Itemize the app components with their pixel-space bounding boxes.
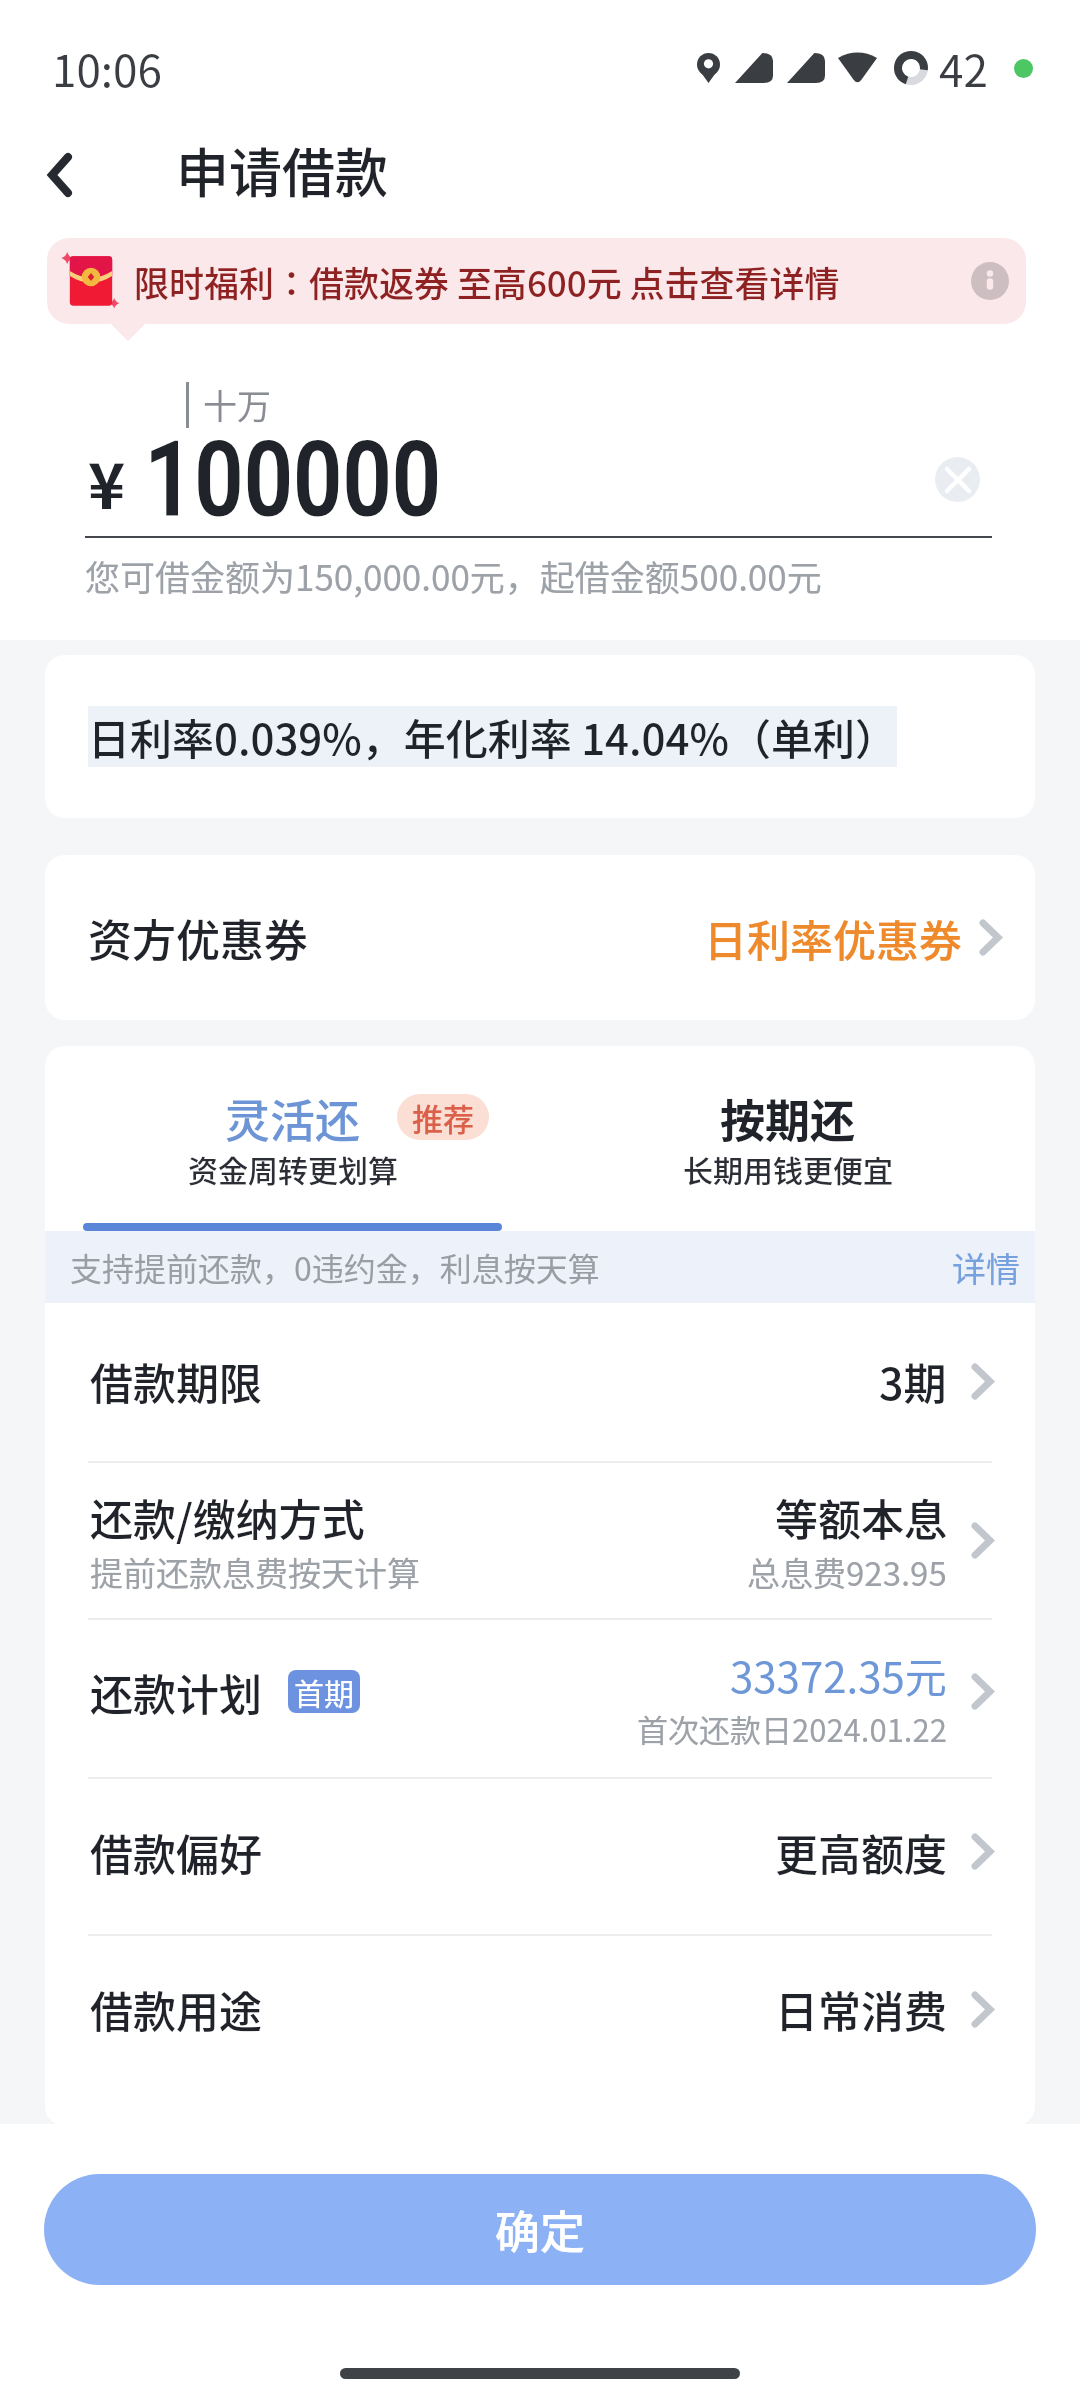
staticText: 33372.35元 xyxy=(730,1644,947,1705)
staticText: 日利率0.039%，年化利率 14.04%（单利） xyxy=(88,706,897,767)
button[interactable]: 资方优惠券 xyxy=(45,855,1035,1020)
staticText: 总息费923.95 xyxy=(747,1548,947,1596)
staticText: 还款/缴纳方式 xyxy=(90,1486,365,1548)
staticText: 您可借金额为150,000.00元，起借金额500.00元 xyxy=(85,550,822,601)
button[interactable]: 还款计划 xyxy=(45,1620,1035,1777)
staticText: 资方优惠券 xyxy=(88,906,308,970)
button[interactable]: 还款/缴纳方式 xyxy=(45,1463,1035,1618)
staticText: 推荐 xyxy=(412,1095,474,1140)
staticText: 按期还 xyxy=(720,1086,856,1151)
staticText: 限时福利：借款返券 至高600元 点击查看详情 xyxy=(134,256,840,307)
button[interactable]: 确定 xyxy=(44,2174,1036,2285)
button[interactable]: 借款偏好 xyxy=(45,1779,1035,1934)
button[interactable]: 借款期限 xyxy=(45,1303,1035,1461)
staticText: 长期用钱更便宜 xyxy=(683,1147,893,1190)
staticText: 借款用途 xyxy=(90,1978,262,2040)
staticText: 更高额度 xyxy=(775,1821,947,1883)
staticText: 支持提前还款，0违约金，利息按天算 xyxy=(70,1244,600,1290)
staticText: 确定 xyxy=(495,2197,586,2262)
button[interactable]: Clear amount xyxy=(935,457,980,502)
button[interactable]: Back xyxy=(23,138,97,212)
staticText: 灵活还 xyxy=(225,1086,361,1151)
button[interactable]: 灵活还 xyxy=(45,1046,540,1223)
button[interactable]: More info xyxy=(971,262,1009,300)
staticText: 申请借款 xyxy=(176,132,388,209)
staticText: 还款计划 xyxy=(90,1661,262,1723)
staticText: 3期 xyxy=(879,1350,947,1412)
button[interactable]: 限时福利：借款返券 至高600元 点击查看详情 xyxy=(47,238,1026,324)
staticText: 等额本息 xyxy=(775,1486,947,1548)
staticText: 42 xyxy=(939,36,988,100)
button[interactable]: 借款用途 xyxy=(45,1936,1035,2092)
staticText: ¥ xyxy=(88,436,126,527)
staticText: 借款期限 xyxy=(90,1350,262,1412)
staticText: 借款偏好 xyxy=(90,1821,262,1883)
staticText: 日常消费 xyxy=(775,1978,947,2040)
staticText: 十万 xyxy=(203,380,271,429)
button[interactable]: 按期还 xyxy=(540,1046,1035,1223)
button[interactable]: 详情 xyxy=(946,1233,1026,1302)
staticText: 提前还款息费按天计算 xyxy=(90,1548,420,1596)
staticText: 首次还款日2024.01.22 xyxy=(637,1706,947,1751)
staticText: 资金周转更划算 xyxy=(188,1147,398,1190)
staticText: 首期 xyxy=(294,1670,354,1713)
staticText: 10:06 xyxy=(52,36,162,100)
staticText: 详情 xyxy=(952,1243,1020,1292)
staticText: 日利率优惠券 xyxy=(704,907,962,969)
staticText: 100000 xyxy=(145,421,442,538)
